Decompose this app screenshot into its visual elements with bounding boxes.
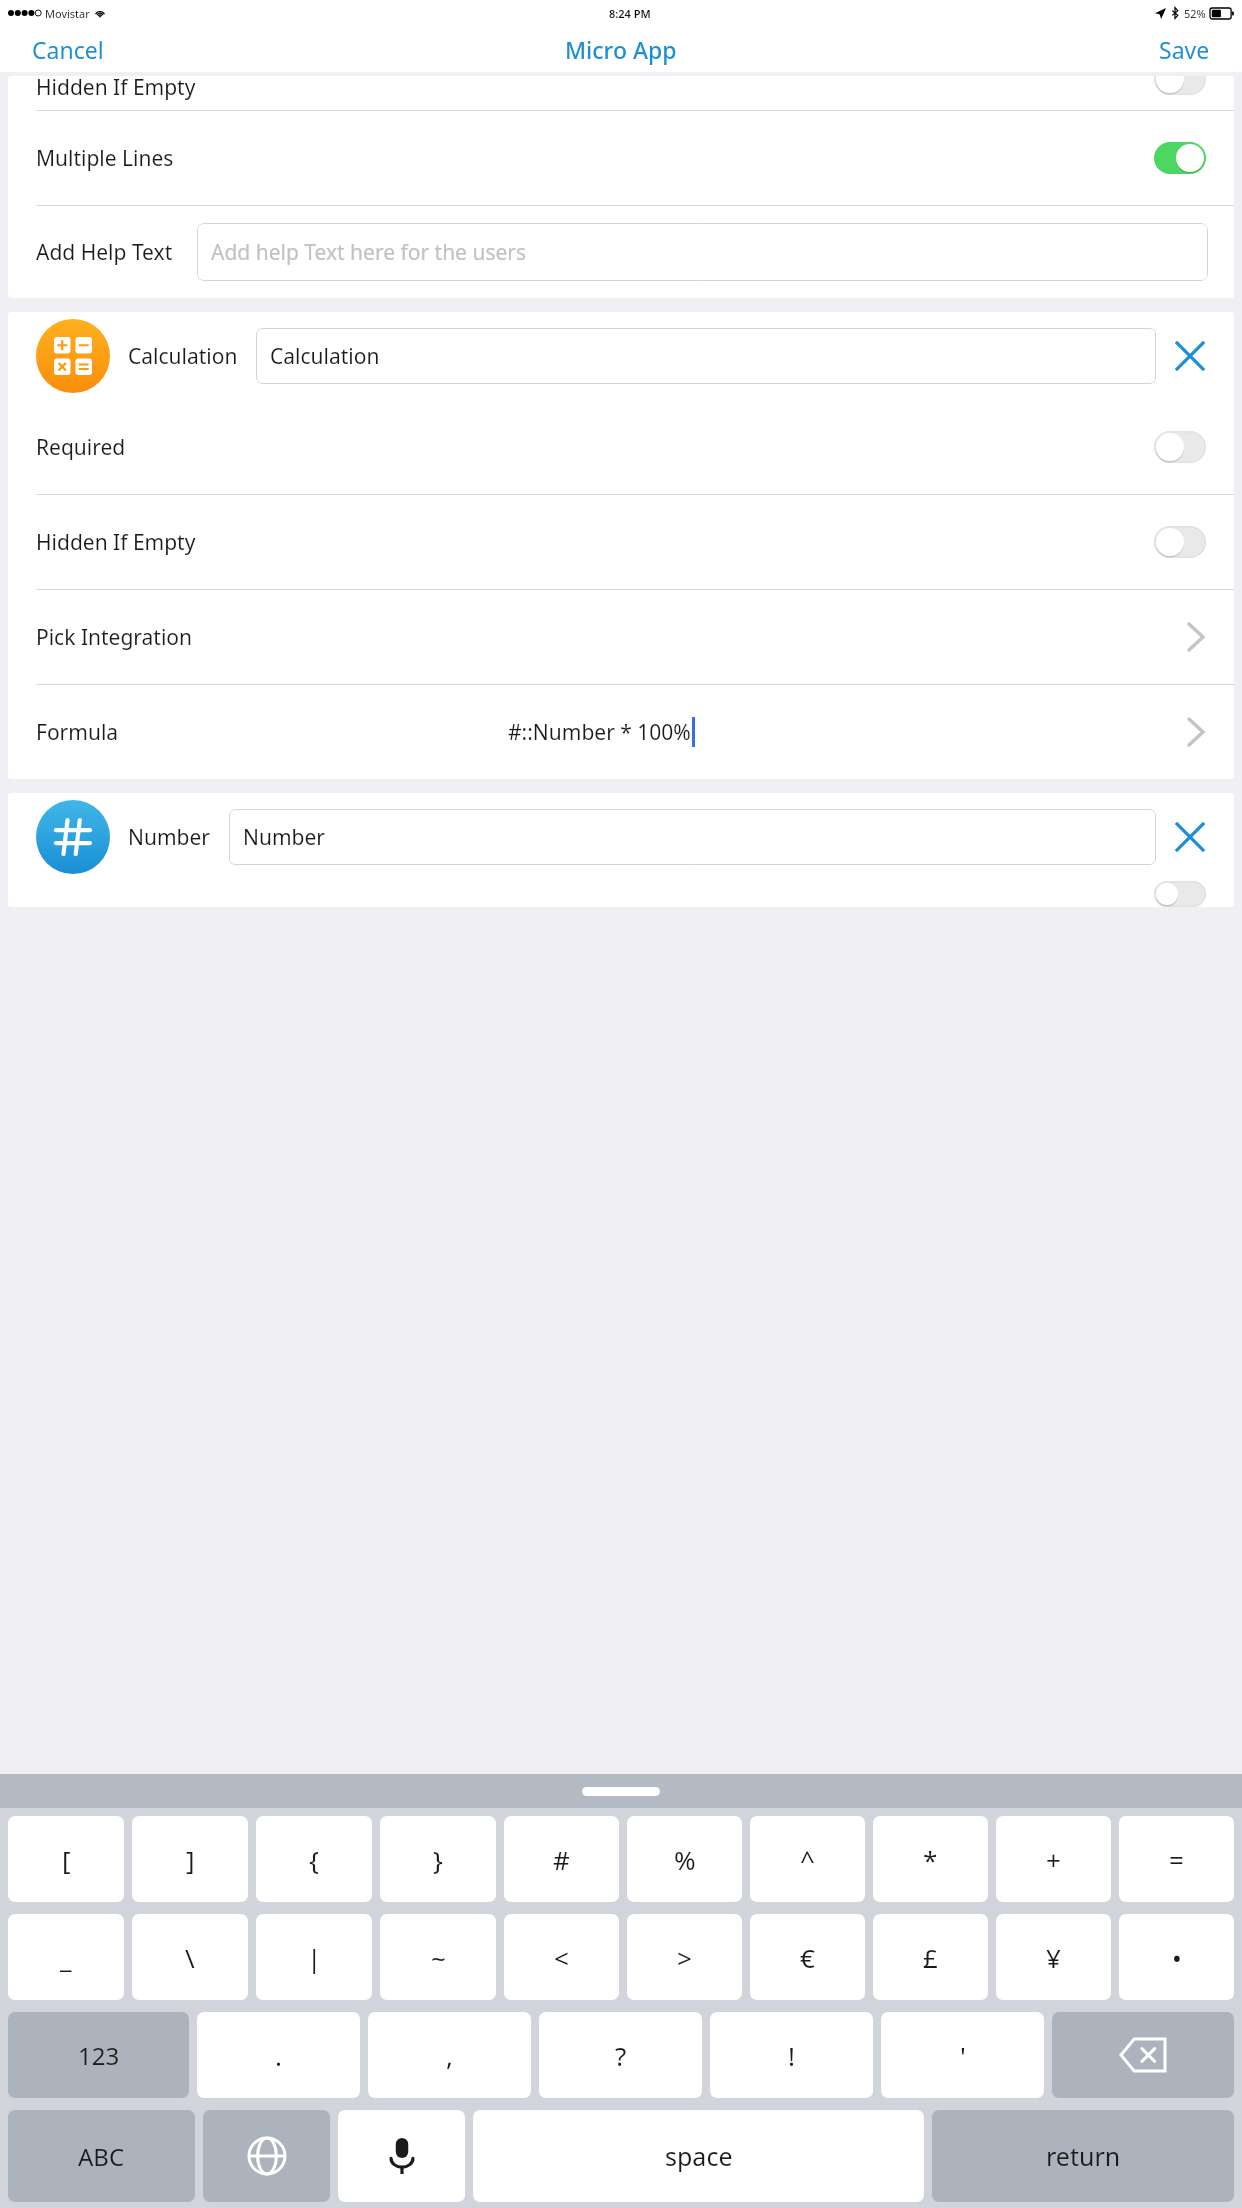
staticText: #::Number * 100% (508, 718, 691, 747)
button[interactable]: \ (132, 1914, 248, 2000)
staticText: Multiple Lines (36, 144, 174, 173)
button[interactable]: Save (1147, 28, 1222, 71)
staticText: Hidden If Empty (36, 528, 196, 557)
staticText: • (1172, 1940, 1182, 1975)
button[interactable]: < (504, 1914, 619, 2000)
button[interactable]: # (504, 1816, 619, 1902)
button[interactable]: Remove Calculation (1166, 332, 1214, 380)
staticText: , (446, 2038, 453, 2073)
staticText: ? (615, 2038, 627, 2073)
staticText: Add help Text here for the users (211, 238, 527, 267)
staticText: return (1046, 2139, 1121, 2173)
button[interactable] (1154, 142, 1206, 174)
staticText: Cancel (32, 34, 104, 65)
staticText: Movistar (45, 6, 90, 21)
staticText: £ (923, 1940, 938, 1975)
button[interactable]: Micro App (553, 28, 689, 71)
staticText: ABC (78, 2140, 125, 2173)
button[interactable]: Pick Integration (8, 590, 1234, 684)
button[interactable]: Remove Number (1166, 813, 1214, 861)
button[interactable]: ! (710, 2012, 873, 2098)
button[interactable] (1154, 526, 1206, 558)
staticText: \ (185, 1940, 195, 1975)
button[interactable]: } (380, 1816, 496, 1902)
staticText: Calculation (128, 342, 238, 371)
staticText: Required (36, 433, 126, 462)
button[interactable]: Formula (8, 685, 1234, 779)
staticText: Number (128, 823, 211, 852)
button[interactable]: , (368, 2012, 531, 2098)
button[interactable]: ¥ (996, 1914, 1111, 2000)
button[interactable]: Change keyboard language (203, 2110, 330, 2202)
button[interactable]: ~ (380, 1914, 496, 2000)
staticText: Pick Integration (36, 623, 193, 652)
staticText: Save (1159, 34, 1210, 65)
button[interactable]: Add help Text here for the users (197, 223, 1208, 281)
staticText: € (800, 1940, 815, 1975)
staticText: 123 (78, 2039, 120, 2072)
button[interactable]: ^ (750, 1816, 865, 1902)
button[interactable]: 123 (8, 2012, 189, 2098)
button[interactable]: | (256, 1914, 372, 2000)
staticText: _ (60, 1940, 72, 1975)
staticText: Add Help Text (36, 238, 173, 267)
button[interactable]: Multiple Lines (8, 111, 1234, 205)
button[interactable]: . (197, 2012, 360, 2098)
button[interactable]: Backspace (1052, 2012, 1234, 2098)
staticText: ~ (431, 1940, 446, 1975)
button[interactable]: * (873, 1816, 988, 1902)
staticText: % (674, 1842, 696, 1877)
staticText: . (275, 2038, 282, 2073)
staticText: space (665, 2139, 733, 2173)
staticText: ^ (800, 1842, 815, 1877)
button[interactable]: + (996, 1816, 1111, 1902)
button[interactable]: ] (132, 1816, 248, 1902)
button[interactable]: > (627, 1914, 742, 2000)
button[interactable]: _ (8, 1914, 124, 2000)
staticText: [ (62, 1842, 71, 1877)
button[interactable]: Required (8, 400, 1234, 494)
staticText: Calculation (270, 342, 380, 371)
staticText: Formula (36, 718, 119, 747)
staticText: Hidden If Empty (36, 76, 196, 102)
button[interactable]: Dictation (338, 2110, 465, 2202)
button[interactable] (1154, 881, 1206, 907)
staticText: # (553, 1842, 570, 1877)
staticText: { (309, 1842, 319, 1877)
button[interactable]: £ (873, 1914, 988, 2000)
button[interactable]: Number (229, 809, 1156, 865)
staticText: 8:24 PM (609, 6, 651, 21)
button[interactable]: [ (8, 1816, 124, 1902)
button[interactable]: = (1119, 1816, 1234, 1902)
button[interactable]: ABC (8, 2110, 195, 2202)
button[interactable]: return (932, 2110, 1234, 2202)
staticText: ] (186, 1842, 195, 1877)
button[interactable]: Cancel (20, 28, 116, 71)
button[interactable]: { (256, 1816, 372, 1902)
button[interactable]: ' (881, 2012, 1044, 2098)
staticText: 52% (1184, 6, 1206, 21)
button[interactable]: • (1119, 1914, 1234, 2000)
button[interactable]: % (627, 1816, 742, 1902)
staticText: < (554, 1940, 569, 1975)
staticText: ' (960, 2038, 966, 2073)
staticText: } (433, 1842, 443, 1877)
button[interactable]: Calculation (256, 328, 1156, 384)
staticText: Micro App (565, 34, 677, 65)
staticText: ¥ (1046, 1940, 1061, 1975)
button[interactable]: Hidden If Empty (8, 495, 1234, 589)
button[interactable]: € (750, 1914, 865, 2000)
button[interactable]: ? (539, 2012, 702, 2098)
staticText: | (307, 1940, 322, 1975)
staticText: + (1046, 1842, 1061, 1877)
button[interactable] (1154, 431, 1206, 463)
staticText: Number (243, 823, 326, 852)
button[interactable] (1154, 76, 1206, 95)
button[interactable]: space (473, 2110, 924, 2202)
staticText: * (923, 1842, 938, 1877)
staticText: = (1169, 1842, 1184, 1877)
staticText: > (677, 1940, 692, 1975)
staticText: ! (788, 2038, 795, 2073)
